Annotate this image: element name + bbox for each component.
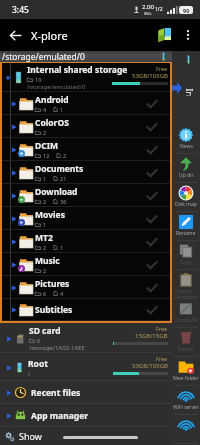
button[interactable]: Free: [2, 63, 170, 92]
staticText: Free: [156, 65, 168, 72]
staticText: 2: [43, 244, 47, 251]
button[interactable]: Delete: [172, 328, 200, 357]
button[interactable]: Expand: [2, 230, 170, 253]
staticText: WiFi server: [173, 404, 199, 411]
button[interactable]: Back: [0, 20, 30, 50]
other: Expand: [11, 238, 17, 246]
staticText: Up dir: [179, 172, 194, 179]
button[interactable]: Share: [172, 415, 200, 444]
button[interactable]: Select Download: [134, 184, 170, 207]
button[interactable]: Disk map: [172, 183, 200, 212]
staticText: 2: [43, 129, 47, 136]
button[interactable]: News: [172, 125, 200, 154]
button[interactable]: Expand: [2, 92, 170, 115]
other: Expand: [11, 123, 17, 131]
button[interactable]: Expand: [2, 184, 170, 207]
staticText: /storage/emulated/0: [27, 83, 86, 91]
button[interactable]: Select Subtitles: [134, 299, 170, 321]
button[interactable]: Select MT2: [134, 230, 170, 253]
button[interactable]: Expand: [0, 404, 172, 427]
staticText: Documents: [35, 163, 84, 175]
other: Expand: [5, 74, 11, 82]
staticText: Rename: [176, 230, 196, 237]
button[interactable]: Select Android: [134, 92, 170, 115]
button[interactable]: Expand: [2, 115, 170, 138]
staticText: Copy: [180, 259, 192, 266]
button[interactable]: More options: [177, 24, 199, 46]
button[interactable]: New folder: [172, 357, 200, 386]
staticText: New folder: [173, 375, 199, 382]
staticText: 21: [60, 175, 67, 182]
staticText: Free: [156, 355, 168, 362]
staticText: /: [28, 370, 31, 378]
button[interactable]: Expand: [2, 207, 170, 230]
other: Expand: [11, 261, 17, 269]
staticText: 2: [43, 267, 47, 274]
button[interactable]: Internal shared storage tab: [172, 51, 200, 125]
other: Expand: [11, 215, 17, 223]
button[interactable]: Show: [0, 427, 172, 445]
button[interactable]: Select Movies: [134, 207, 170, 230]
other: Expand: [6, 364, 12, 372]
staticText: 4: [60, 290, 64, 297]
staticText: 2: [43, 198, 47, 205]
staticText: Subtitles: [35, 304, 73, 316]
staticText: Download: [35, 186, 78, 198]
staticText: 2.00: [142, 3, 154, 11]
staticText: X-plore: [31, 28, 68, 43]
staticText: /storage/emulated/0: [2, 51, 85, 62]
staticText: 6: [43, 290, 47, 297]
button[interactable]: Select Documents: [134, 161, 170, 184]
button[interactable]: Expand: [0, 381, 172, 404]
button[interactable]: Select ColorOS: [134, 115, 170, 138]
button[interactable]: WiFi server: [172, 386, 200, 415]
staticText: ColorOS: [35, 117, 69, 129]
staticText: MT2: [35, 232, 53, 244]
button[interactable]: Expand: [2, 253, 170, 276]
staticText: 1: [43, 221, 47, 228]
button[interactable]: Copy: [172, 241, 200, 270]
staticText: 1: [60, 244, 64, 251]
staticText: 2: [63, 152, 67, 159]
staticText: 6: [37, 337, 41, 344]
staticText: 53GB/105GB: [132, 72, 168, 80]
staticText: Recent files: [31, 387, 81, 399]
button[interactable]: Up dir: [172, 154, 200, 183]
button[interactable]: Expand: [2, 299, 170, 321]
other: Expand: [6, 412, 12, 420]
button[interactable]: Expand: [2, 138, 170, 161]
other: Expand: [6, 389, 12, 397]
button[interactable]: Expand: [2, 161, 170, 184]
button[interactable]: /storage/emulated/0: [0, 51, 172, 62]
staticText: 53GB/105GB: [132, 362, 168, 370]
staticText: DCIM: [35, 140, 59, 152]
other: Expand: [11, 169, 17, 177]
button[interactable]: Rename: [172, 212, 200, 241]
staticText: 12: [43, 152, 50, 159]
button[interactable]: Select Music: [134, 253, 170, 276]
staticText: 3:45: [12, 4, 29, 16]
button[interactable]: X-plore icon: [151, 22, 177, 48]
button[interactable]: Free: [0, 323, 172, 353]
other: Expand: [11, 192, 17, 200]
staticText: 1: [43, 175, 47, 182]
staticText: Internal shared storage: [27, 64, 128, 76]
button[interactable]: Copy to clipboard: [172, 270, 200, 299]
other: Expand: [11, 306, 17, 314]
staticText: Create ZIP: [174, 317, 199, 324]
staticText: 4: [43, 106, 47, 113]
staticText: Internal sh…: [182, 88, 194, 95]
staticText: SD card: [29, 325, 61, 337]
staticText: 15GB/15GB: [135, 332, 168, 340]
staticText: Pictures: [35, 278, 70, 290]
staticText: 36: [60, 198, 67, 205]
button[interactable]: Select Pictures: [134, 276, 170, 299]
button[interactable]: Free: [0, 353, 172, 381]
staticText: Music: [35, 255, 60, 267]
staticText: /storage/1A02-1AEE: [29, 344, 85, 352]
button[interactable]: Select DCIM: [134, 138, 170, 161]
button[interactable]: Expand: [2, 276, 170, 299]
button[interactable]: Create ZIP: [172, 299, 200, 328]
staticText: Root: [28, 358, 48, 370]
staticText: Android: [35, 94, 69, 106]
